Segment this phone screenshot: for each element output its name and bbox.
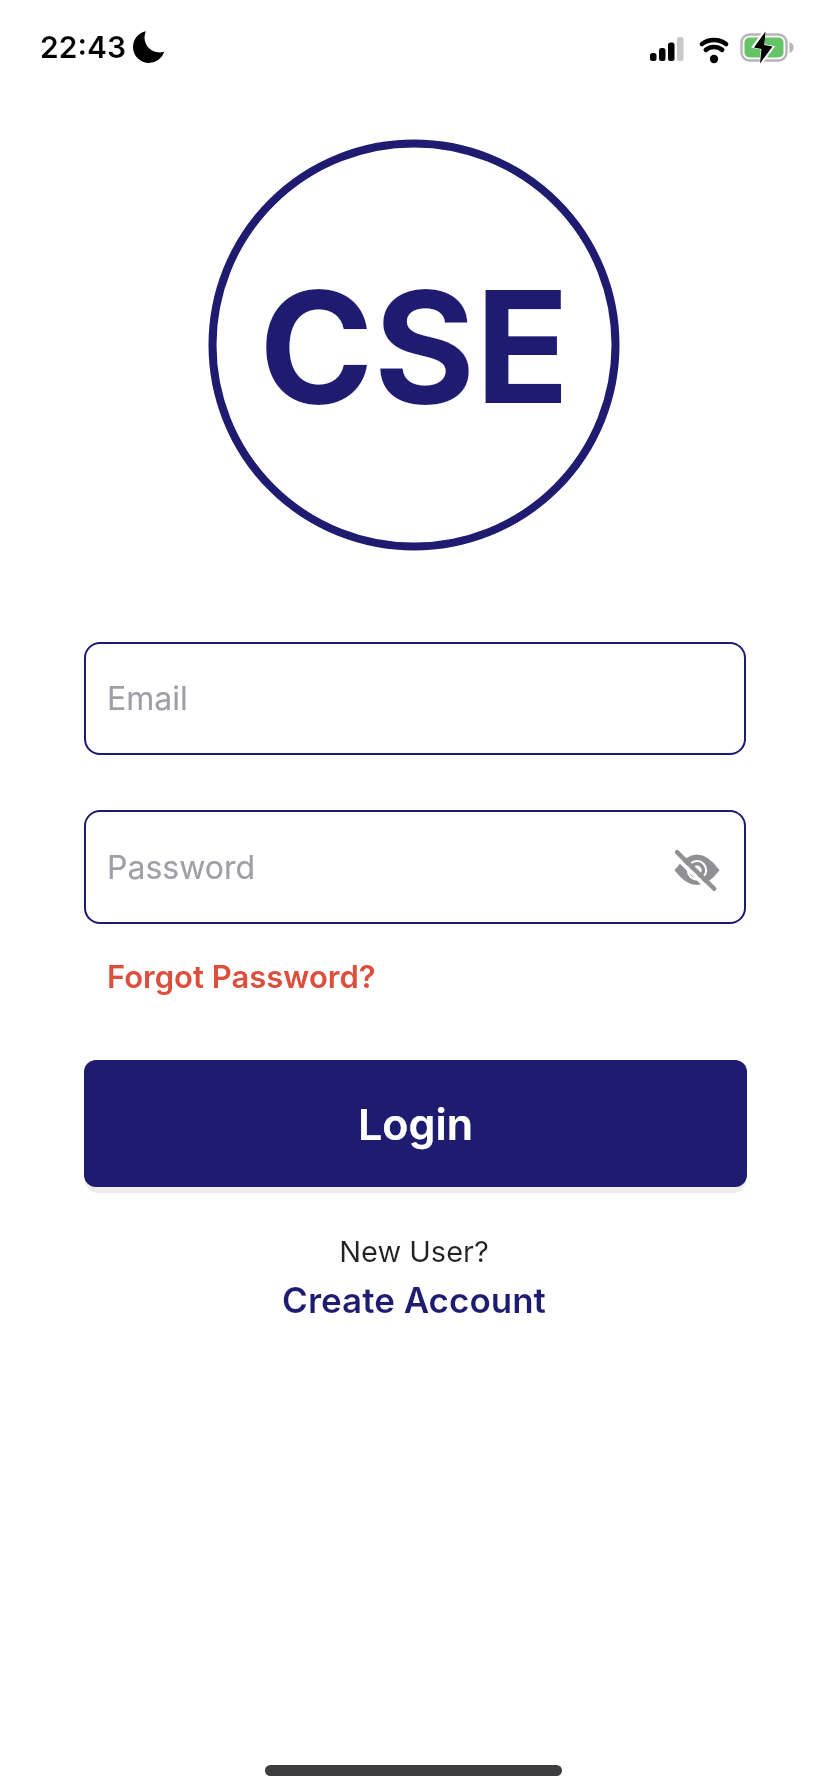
staticText: Create Account (282, 1279, 546, 1321)
button[interactable]: Email (84, 642, 746, 755)
staticText: Forgot Password? (107, 958, 376, 996)
button[interactable]: Login (84, 1060, 747, 1187)
staticText: New User? (339, 1234, 489, 1269)
button[interactable]: Forgot Password? (107, 958, 376, 996)
staticText: Password (107, 848, 256, 887)
staticText: Email (107, 679, 188, 718)
button[interactable]: Create Account (282, 1279, 546, 1321)
button[interactable] (672, 842, 722, 892)
staticText: Login (358, 1098, 473, 1150)
staticText: CSE (259, 253, 570, 441)
button[interactable]: Password (84, 810, 746, 924)
staticText: 22:43 (40, 29, 127, 65)
